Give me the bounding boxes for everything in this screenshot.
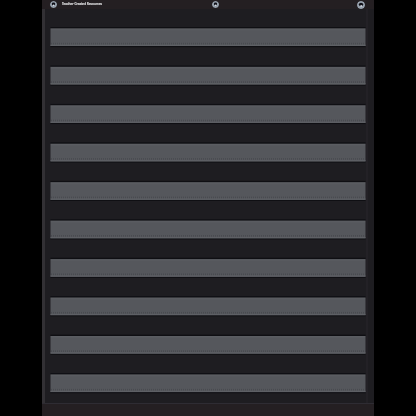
button[interactable] xyxy=(51,145,366,163)
button[interactable] xyxy=(51,28,366,46)
button[interactable]: Open navigation drawer xyxy=(50,1,57,8)
button[interactable] xyxy=(51,106,366,124)
button[interactable] xyxy=(51,262,366,280)
staticText: Teacher Created Resources xyxy=(62,2,102,6)
button[interactable] xyxy=(51,184,366,202)
button[interactable]: More options xyxy=(357,1,365,9)
button[interactable]: Account xyxy=(212,1,219,8)
button[interactable] xyxy=(51,67,366,85)
button[interactable] xyxy=(51,379,366,397)
button[interactable] xyxy=(51,301,366,319)
button[interactable] xyxy=(51,223,366,241)
button[interactable] xyxy=(51,340,366,358)
